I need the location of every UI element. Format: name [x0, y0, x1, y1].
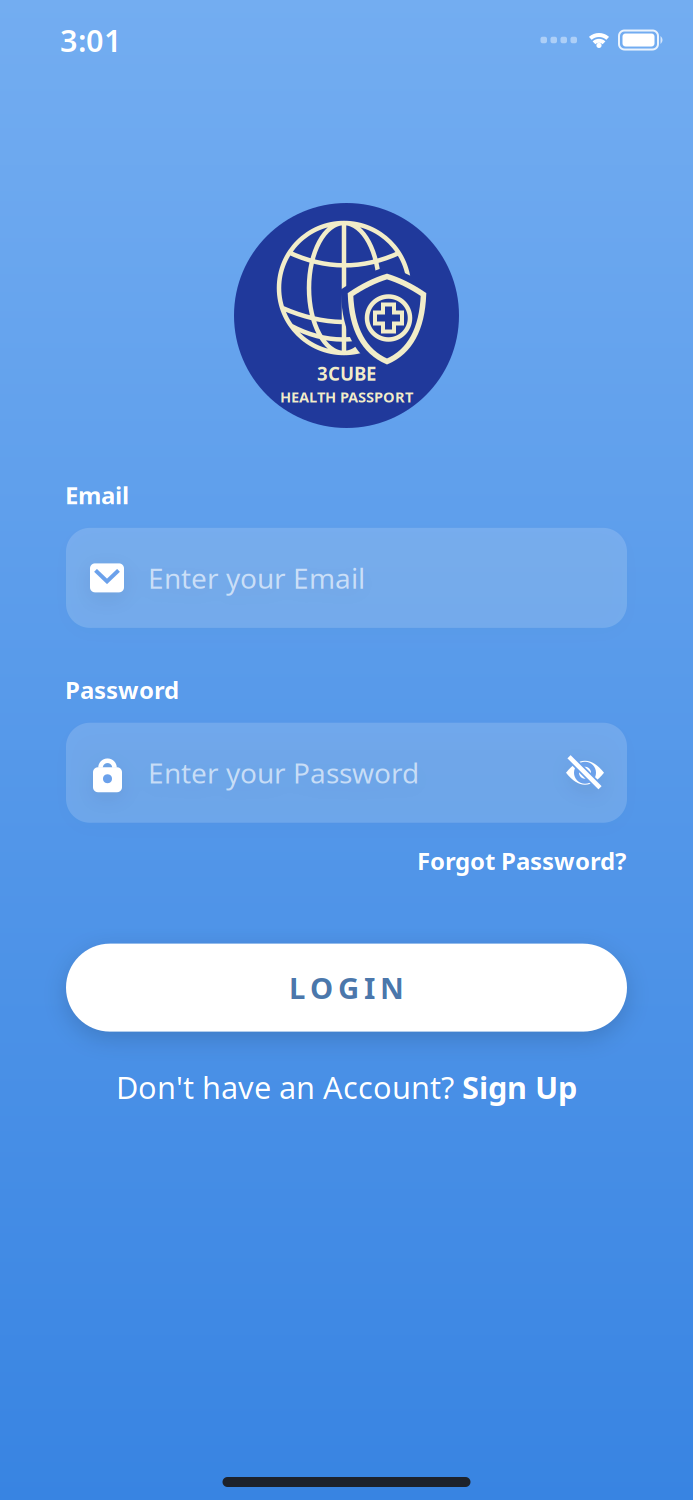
staticText: LOGIN [289, 968, 404, 1007]
button[interactable]: Enter your Email [66, 528, 627, 628]
staticText: 3:01 [60, 20, 122, 60]
button[interactable]: Don't have an Account? Sign Up [116, 1067, 577, 1107]
staticText: Enter your Email [148, 559, 365, 596]
button[interactable]: LOGIN [66, 944, 627, 1032]
staticText: Forgot Password? [417, 845, 626, 877]
staticText: Password [65, 674, 179, 706]
staticText: 3CUBE [317, 361, 376, 386]
staticText: Don't have an Account? Sign Up [116, 1067, 577, 1107]
button[interactable]: Forgot Password? [417, 845, 626, 877]
button[interactable]: Show password [565, 757, 627, 789]
staticText: HEALTH PASSPORT [280, 387, 413, 406]
staticText: Email [65, 479, 129, 511]
button[interactable]: Enter your Password [66, 723, 627, 823]
staticText: Enter your Password [148, 754, 419, 791]
